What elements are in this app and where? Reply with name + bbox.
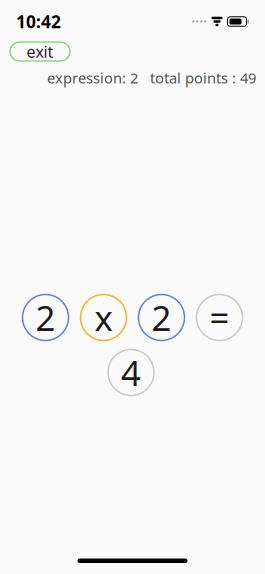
staticText: exit: [26, 41, 53, 62]
staticText: x: [94, 294, 112, 340]
staticText: 10:42: [16, 10, 61, 33]
button[interactable]: 4: [108, 349, 154, 395]
staticText: 2: [35, 294, 55, 340]
staticText: 4: [121, 349, 141, 395]
button[interactable]: 2: [22, 294, 68, 340]
button[interactable]: x: [80, 294, 126, 340]
button[interactable]: 2: [138, 294, 184, 340]
button[interactable]: exit: [10, 42, 70, 61]
button[interactable]: =: [196, 294, 242, 340]
staticText: =: [209, 294, 229, 340]
staticText: expression: 2 total points : 49: [47, 68, 256, 87]
staticText: 2: [151, 294, 171, 340]
